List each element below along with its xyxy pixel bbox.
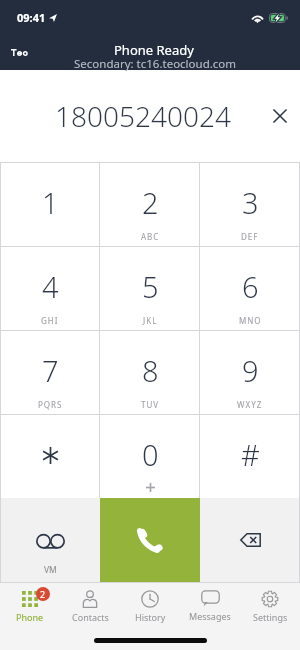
staticText: #	[241, 435, 260, 474]
button[interactable]: 2	[100, 162, 200, 246]
staticText: Phone	[16, 611, 44, 623]
button[interactable]: Clear number	[264, 100, 296, 132]
staticText: 2	[142, 183, 159, 222]
button[interactable]: 6	[200, 246, 300, 330]
staticText: 7	[42, 351, 59, 390]
button[interactable]: 9	[200, 330, 300, 414]
button[interactable]: 8	[100, 330, 200, 414]
staticText: Contacts	[72, 611, 109, 623]
button[interactable]: 5	[100, 246, 200, 330]
button[interactable]	[0, 414, 100, 498]
staticText: ABC	[141, 231, 160, 242]
staticText: DEF	[241, 231, 259, 242]
staticText: MNO	[239, 315, 262, 326]
staticText: TUV	[141, 399, 160, 410]
staticText: PQRS	[38, 399, 63, 410]
staticText: 18005240024	[55, 97, 231, 135]
button[interactable]: 2	[0, 586, 60, 627]
button[interactable]: Settings	[240, 586, 300, 627]
staticText: 9	[242, 351, 259, 390]
button[interactable]: 4	[0, 246, 100, 330]
staticText: History	[135, 611, 166, 623]
other: Teo	[11, 49, 28, 56]
staticText: 4	[42, 267, 59, 306]
button[interactable]: Backspace	[200, 498, 300, 582]
button[interactable]: 1	[0, 162, 100, 246]
staticText: 5	[142, 267, 159, 306]
staticText: WXYZ	[237, 399, 263, 410]
button[interactable]: History	[120, 586, 180, 627]
staticText: 2	[40, 588, 46, 600]
staticText: JKL	[143, 315, 158, 326]
staticText: 1	[42, 183, 59, 222]
staticText: Settings	[253, 611, 288, 623]
staticText: GHI	[41, 315, 59, 326]
staticText: Secondary: tc16.teocloud.com	[74, 56, 237, 72]
button[interactable]: #	[200, 414, 300, 498]
button[interactable]: Call	[100, 498, 200, 582]
staticText: Messages	[189, 610, 231, 622]
staticText: 8	[142, 351, 159, 390]
button[interactable]: Messages	[180, 586, 240, 626]
button[interactable]: 0	[100, 414, 200, 498]
staticText: 6	[242, 267, 259, 306]
button[interactable]: VM	[0, 498, 100, 582]
staticText: Phone Ready	[114, 41, 194, 59]
staticText: 3	[242, 183, 259, 222]
staticText: VM	[44, 564, 57, 576]
staticText: 0	[142, 435, 159, 474]
button[interactable]: Contacts	[60, 586, 120, 627]
button[interactable]: 7	[0, 330, 100, 414]
button[interactable]: 3	[200, 162, 300, 246]
staticText: 09:41	[17, 10, 46, 25]
